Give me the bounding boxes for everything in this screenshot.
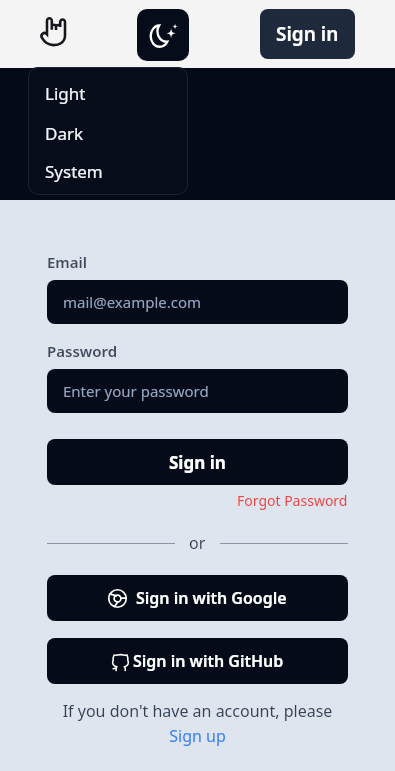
button[interactable]: Home [30, 8, 76, 54]
staticText: Sign in with Google [136, 587, 287, 609]
staticText: If you don't have an account, please Sig… [47, 700, 348, 746]
staticText: System [45, 160, 103, 183]
button[interactable]: Sign in [260, 9, 355, 59]
button[interactable]: mail@example.com [47, 280, 348, 324]
button[interactable]: Sign in [47, 439, 348, 485]
staticText: Password [47, 341, 118, 361]
staticText: Forgot Password [237, 491, 348, 510]
staticText: Light [45, 82, 86, 105]
staticText: mail@example.com [63, 292, 202, 312]
staticText: Email [47, 252, 88, 272]
button[interactable]: System [28, 153, 188, 189]
staticText: or [189, 532, 206, 554]
staticText: Sign in with GitHub [133, 650, 284, 672]
button[interactable]: If you don't have an account, please Sig… [47, 700, 348, 746]
button[interactable]: Sign in with Google [47, 575, 348, 621]
button[interactable]: Light [28, 73, 188, 113]
staticText: Enter your password [63, 381, 209, 401]
button[interactable]: Forgot Password [237, 491, 348, 510]
staticText: Sign in [169, 451, 226, 474]
staticText: Dark [45, 122, 84, 145]
button[interactable]: Dark [28, 113, 188, 153]
button[interactable]: Enter your password [47, 369, 348, 413]
staticText: Sign in [276, 21, 339, 47]
button[interactable]: Sign in with GitHub [47, 638, 348, 684]
button[interactable]: Toggle theme [137, 9, 189, 61]
